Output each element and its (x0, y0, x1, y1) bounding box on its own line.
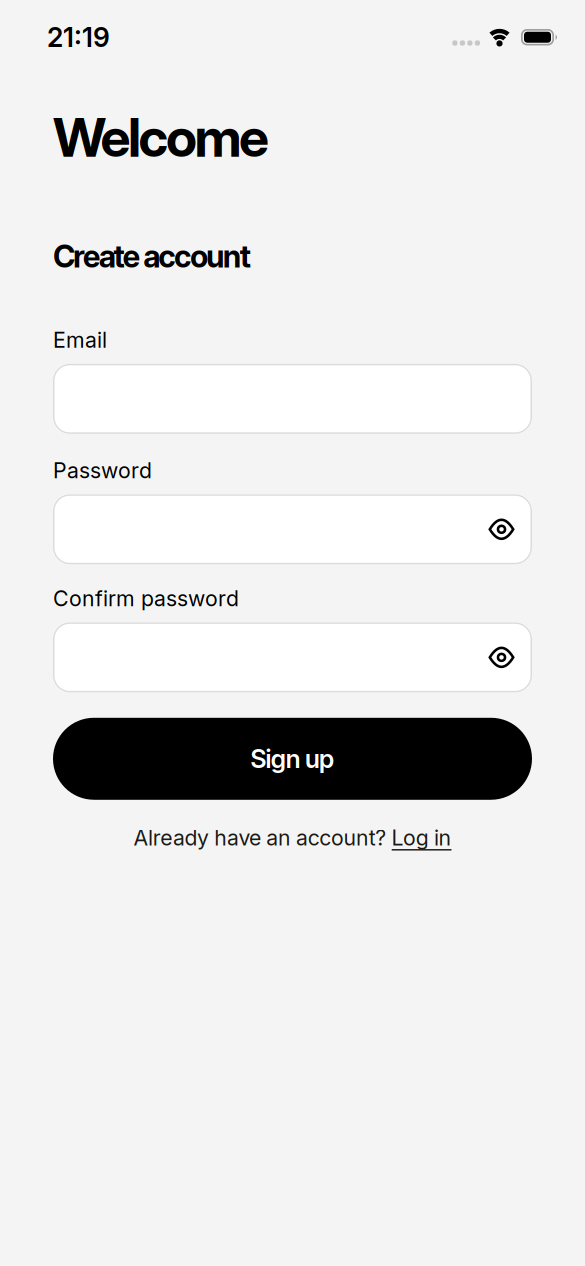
staticText: Already have an account? Log in (133, 825, 451, 850)
button[interactable]: Sign up (53, 718, 532, 800)
button[interactable]: Show password (489, 520, 514, 539)
button[interactable]: Show password (489, 648, 514, 667)
staticText: Email (53, 327, 107, 353)
staticText: Welcome (53, 105, 269, 169)
staticText: Sign up (250, 744, 335, 774)
staticText: Confirm password (53, 586, 239, 611)
staticText: 21:19 (47, 21, 110, 53)
staticText: Create account (53, 238, 251, 274)
button[interactable]: Already have an account? Log in (133, 825, 451, 850)
staticText: Password (53, 458, 152, 483)
